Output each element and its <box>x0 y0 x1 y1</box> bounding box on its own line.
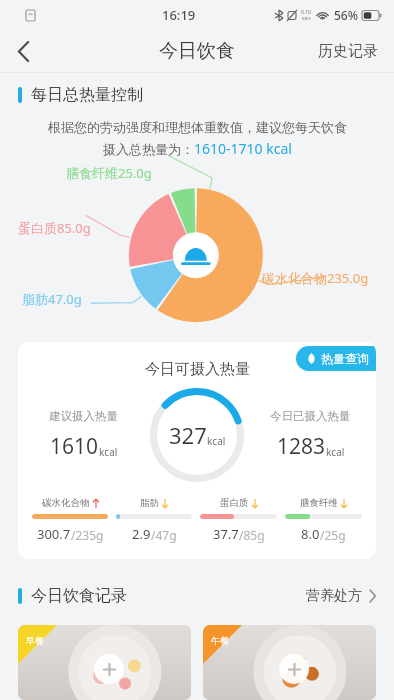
staticText: 2.9 <box>132 525 151 543</box>
staticText: /47g <box>151 527 177 543</box>
staticText: 蛋白质85.0g <box>18 219 91 237</box>
staticText: 今日已摄入热量 <box>270 409 351 423</box>
button[interactable]: 历史记录 <box>302 34 394 69</box>
button[interactable]: 早餐 <box>18 625 191 700</box>
staticText: /25g <box>320 527 346 543</box>
button[interactable]: 添加午餐 <box>279 654 309 684</box>
staticText: 0.10 <box>301 9 311 16</box>
staticText: 早餐 <box>26 635 44 646</box>
staticText: 摄入总热量为： <box>103 141 194 157</box>
button[interactable]: 午餐 <box>203 625 376 700</box>
staticText: 脂肪 <box>140 497 159 509</box>
staticText: 今日饮食 <box>159 39 235 63</box>
staticText: 每日总热量控制 <box>31 85 143 105</box>
staticText: 1610 <box>50 432 99 461</box>
staticText: 56% <box>334 7 358 23</box>
staticText: 根据您的劳动强度和理想体重数值，建议您每天饮食 <box>48 119 347 135</box>
staticText: 午餐 <box>211 635 229 646</box>
staticText: 热量查询 <box>321 351 369 366</box>
staticText: 8.0 <box>301 525 320 543</box>
staticText: 37.7 <box>213 525 239 543</box>
staticText: /235g <box>71 527 104 543</box>
staticText: 300.7 <box>37 525 71 543</box>
staticText: 1283 <box>277 432 326 461</box>
staticText: kcal <box>207 434 226 448</box>
button[interactable]: 营养处方 <box>302 581 380 611</box>
staticText: 历史记录 <box>318 42 378 61</box>
staticText: kcal <box>99 445 118 459</box>
button[interactable]: 热量查询 <box>296 346 376 371</box>
staticText: 蛋白质 <box>220 497 249 509</box>
staticText: KB/S <box>302 16 311 21</box>
staticText: 脂肪47.0g <box>22 290 82 308</box>
staticText: 今日饮食记录 <box>31 586 127 606</box>
staticText: /85g <box>239 527 265 543</box>
staticText: 327 <box>169 420 207 450</box>
staticText: 建议摄入热量 <box>49 409 118 423</box>
button[interactable]: 添加早餐 <box>94 654 124 684</box>
staticText: 1610-1710 kcal <box>194 139 292 158</box>
staticText: 今日可摄入热量 <box>145 360 250 379</box>
staticText: 16:19 <box>162 6 196 24</box>
staticText: kcal <box>326 445 345 459</box>
staticText: 碳水化合物235.0g <box>262 269 369 287</box>
button[interactable]: 返回 <box>0 30 46 72</box>
staticText: 营养处方 <box>306 587 362 605</box>
staticText: 膳食纤维 <box>300 497 338 509</box>
staticText: 碳水化合物 <box>42 497 90 509</box>
staticText: 膳食纤维25.0g <box>66 164 152 182</box>
